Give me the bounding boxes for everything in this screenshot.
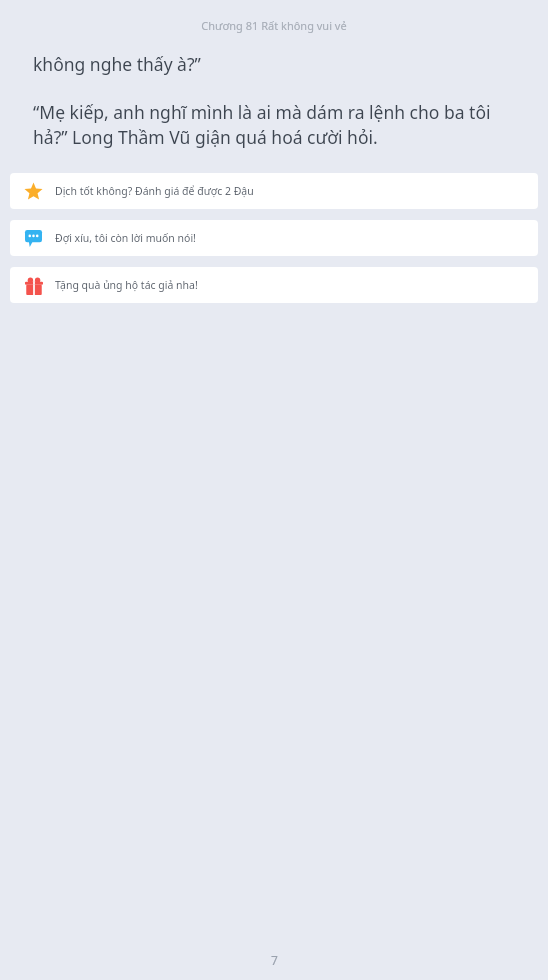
staticText: không nghe thấy à?”: [33, 52, 520, 76]
staticText: Tặng quà ủng hộ tác giả nha!: [55, 278, 198, 292]
staticText: Chương 81 Rất không vui vẻ: [201, 18, 347, 33]
staticText: Đợi xíu, tôi còn lời muốn nói!: [55, 231, 196, 245]
staticText: Dịch tốt không? Đánh giá để được 2 Đậu: [55, 184, 254, 198]
button[interactable]: Send gift: [10, 267, 538, 303]
other: Rate translation: [23, 181, 44, 202]
staticText: 7: [271, 952, 278, 968]
staticText: “Mẹ kiếp, anh nghĩ mình là ai mà dám ra …: [33, 100, 522, 149]
other: Comment: [23, 228, 44, 249]
button[interactable]: Rate translation: [10, 173, 538, 209]
button[interactable]: Comment: [10, 220, 538, 256]
other: Send gift: [23, 275, 44, 296]
